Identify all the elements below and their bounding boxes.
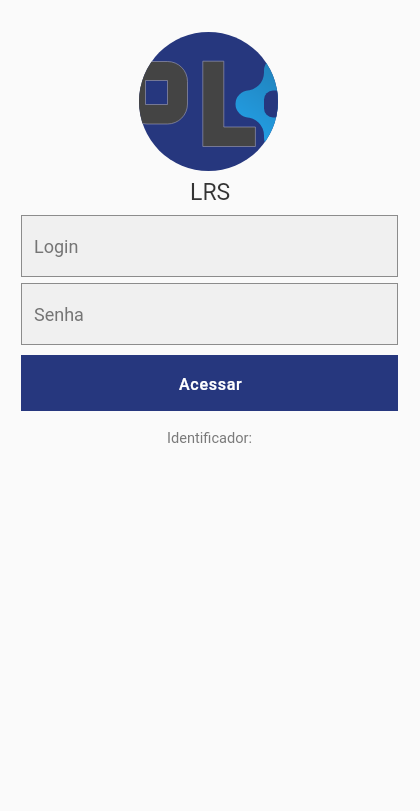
staticText: LRS — [190, 179, 231, 206]
staticText: Senha — [34, 304, 84, 325]
button[interactable]: Acessar — [21, 355, 398, 411]
button[interactable]: Login — [21, 215, 398, 277]
staticText: Identificador: — [167, 429, 253, 446]
button[interactable]: Senha — [21, 283, 398, 345]
other: LRS logo — [139, 32, 278, 171]
staticText: Acessar — [179, 375, 243, 394]
staticText: Login — [34, 236, 79, 257]
